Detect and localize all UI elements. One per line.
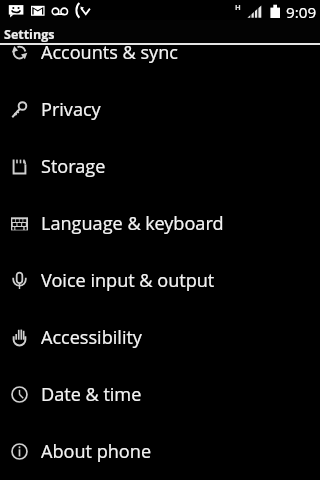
staticText: Accessibility xyxy=(41,325,142,350)
staticText: Privacy xyxy=(41,97,101,122)
staticText: Storage xyxy=(41,154,106,179)
staticText: Date & time xyxy=(41,382,142,407)
staticText: 9:09 xyxy=(286,2,317,22)
button[interactable]: About phone xyxy=(0,423,320,480)
staticText: Settings xyxy=(4,26,55,43)
button[interactable]: Accessibility xyxy=(0,309,320,366)
staticText: Language & keyboard xyxy=(41,211,224,236)
staticText: H xyxy=(235,2,241,12)
staticText: About phone xyxy=(41,439,152,464)
button[interactable]: Voice input & output xyxy=(0,252,320,309)
button[interactable]: Language & keyboard xyxy=(0,195,320,252)
button[interactable]: Accounts & sync xyxy=(0,24,320,81)
staticText: Accounts & sync xyxy=(41,40,178,65)
staticText: Voice input & output xyxy=(41,268,215,293)
button[interactable]: Privacy xyxy=(0,81,320,138)
button[interactable]: Date & time xyxy=(0,366,320,423)
button[interactable]: Storage xyxy=(0,138,320,195)
